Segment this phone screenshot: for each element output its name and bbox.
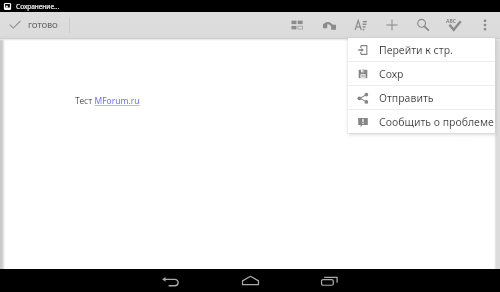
button[interactable]: Add — [376, 12, 407, 38]
staticText: Сохр — [379, 67, 404, 81]
button[interactable]: Recents — [320, 269, 339, 292]
button[interactable]: Layout — [283, 12, 314, 38]
button[interactable]: Сообщить о проблеме — [348, 110, 495, 133]
staticText: ABC — [446, 18, 456, 25]
button[interactable]: More options — [469, 12, 500, 38]
button[interactable]: Сохр — [348, 62, 495, 85]
staticText: Сохранение... — [16, 2, 60, 11]
staticText: Тест MForum.ru — [75, 95, 140, 107]
button[interactable]: Spellcheck — [438, 12, 469, 38]
button[interactable]: Back — [161, 269, 180, 292]
staticText: Сообщить о проблеме — [379, 115, 494, 129]
button[interactable]: ГОТОВО — [0, 12, 67, 38]
staticText: Отправить — [379, 91, 434, 105]
button[interactable]: Text formatting — [345, 12, 376, 38]
staticText: ГОТОВО — [28, 20, 58, 30]
button[interactable]: Отправить — [348, 86, 495, 109]
button[interactable]: Перейти к стр. — [348, 38, 495, 61]
button[interactable]: Home — [241, 269, 260, 292]
button[interactable]: Search — [407, 12, 438, 38]
button[interactable]: Undo — [314, 12, 345, 38]
staticText: Перейти к стр. — [379, 43, 453, 57]
